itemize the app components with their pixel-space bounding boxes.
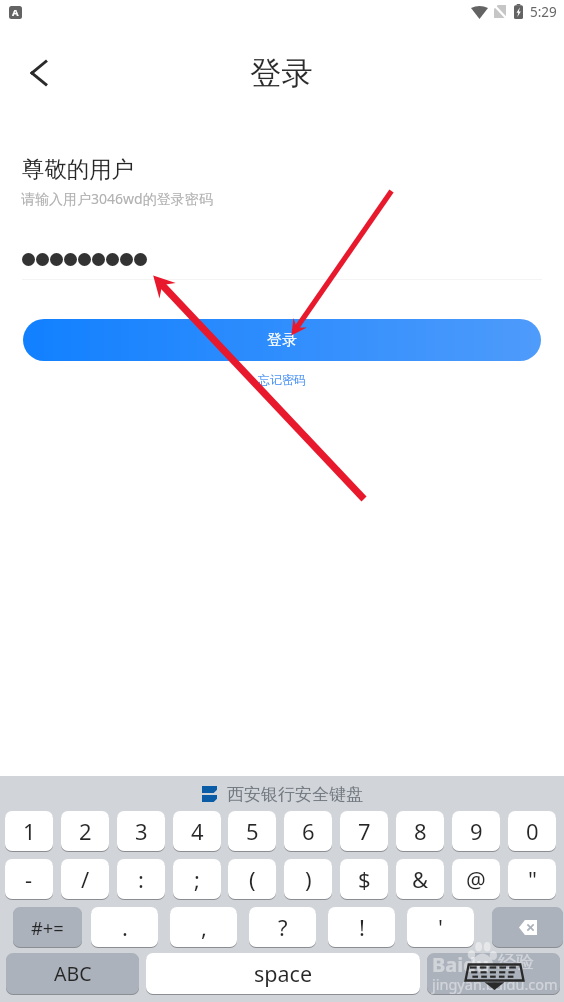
button[interactable]: Backspace <box>492 907 563 947</box>
staticText: jingyan.baidu.com <box>432 974 558 994</box>
staticText: ( <box>249 864 256 894</box>
staticText: ; <box>194 864 200 894</box>
staticText: - <box>25 864 33 894</box>
button[interactable]: ( <box>228 859 276 899</box>
staticText: ! <box>359 912 365 942</box>
button[interactable]: Back <box>17 51 61 95</box>
staticText: 1 <box>23 816 36 846</box>
button[interactable]: ) <box>284 859 332 899</box>
staticText: 请输入用户3046wd的登录密码 <box>21 189 213 208</box>
staticText: 9 <box>470 816 483 846</box>
button[interactable]: " <box>508 859 556 899</box>
button[interactable]: ; <box>173 859 221 899</box>
button[interactable]: - <box>5 859 53 899</box>
staticText: 忘记密码 <box>258 372 306 387</box>
staticText: 登录 <box>250 54 313 94</box>
staticText: 5:29 <box>530 3 557 21</box>
button[interactable]: . <box>91 907 158 947</box>
button[interactable]: ? <box>249 907 316 947</box>
button[interactable]: 1 <box>5 811 53 851</box>
button[interactable]: 2 <box>61 811 109 851</box>
button[interactable]: 9 <box>452 811 500 851</box>
button[interactable]: 4 <box>173 811 221 851</box>
staticText: / <box>81 864 90 894</box>
button[interactable]: ! <box>328 907 395 947</box>
button[interactable]: 忘记密码 <box>252 369 312 390</box>
staticText: 8 <box>414 816 427 846</box>
staticText: 6 <box>302 816 315 846</box>
staticText: ' <box>438 912 443 942</box>
staticText: : <box>138 864 144 894</box>
staticText: Baidu <box>432 951 489 978</box>
button[interactable]: 3 <box>117 811 165 851</box>
button[interactable]: 0 <box>508 811 556 851</box>
staticText: 5 <box>246 816 259 846</box>
button[interactable]: $ <box>340 859 388 899</box>
staticText: " <box>528 864 537 894</box>
staticText: $ <box>358 864 371 894</box>
staticText: ? <box>278 912 288 942</box>
button[interactable]: @ <box>452 859 500 899</box>
staticText: @ <box>466 864 486 894</box>
staticText: 7 <box>358 816 371 846</box>
staticText: 0 <box>526 816 539 846</box>
staticText: . <box>122 912 128 942</box>
staticText: 2 <box>79 816 92 846</box>
staticText: A <box>12 6 19 19</box>
staticText: 尊敬的用户 <box>22 155 134 183</box>
button[interactable]: ' <box>407 907 474 947</box>
staticText: ) <box>305 864 312 894</box>
button[interactable]: / <box>61 859 109 899</box>
button[interactable]: 5 <box>228 811 276 851</box>
staticText: space <box>254 959 313 988</box>
button[interactable]: 8 <box>396 811 444 851</box>
staticText: #+= <box>31 915 64 940</box>
staticText: 3 <box>135 816 148 846</box>
button[interactable]: 7 <box>340 811 388 851</box>
button[interactable]: 登录 <box>23 319 541 361</box>
button[interactable]: : <box>117 859 165 899</box>
staticText: & <box>412 864 429 894</box>
button[interactable]: ABC <box>6 953 139 994</box>
button[interactable]: space <box>146 953 420 994</box>
button[interactable]: & <box>396 859 444 899</box>
button[interactable]: Hide keyboard <box>427 953 560 994</box>
button[interactable]: 6 <box>284 811 332 851</box>
staticText: 经验 <box>498 951 534 974</box>
staticText: 4 <box>191 816 204 846</box>
button[interactable]: #+= <box>13 907 82 947</box>
staticText: 西安银行安全键盘 <box>227 784 363 805</box>
staticText: 登录 <box>267 331 297 350</box>
staticText: ABC <box>54 960 92 987</box>
staticText: , <box>201 912 207 942</box>
button[interactable]: , <box>170 907 237 947</box>
